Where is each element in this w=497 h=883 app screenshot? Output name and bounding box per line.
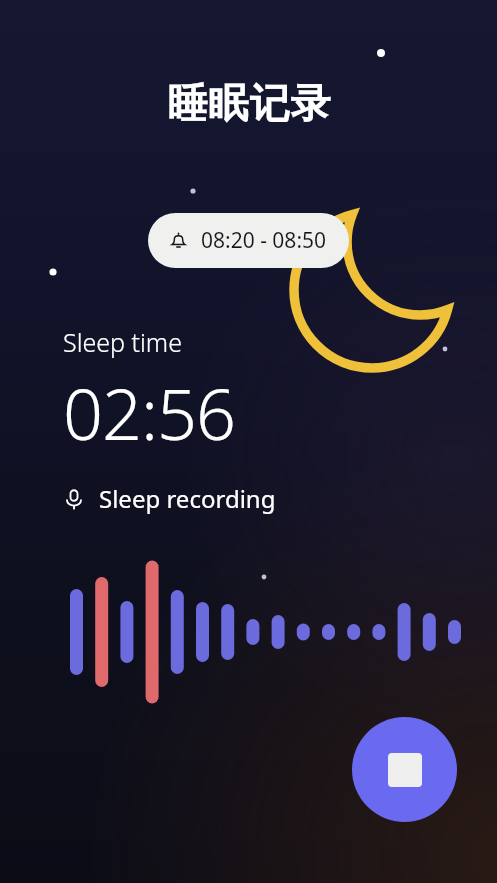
staticText: 睡眠记录: [167, 78, 331, 128]
staticText: Sleep time: [63, 325, 182, 359]
staticText: 08:20 - 08:50: [201, 226, 327, 255]
button[interactable]: Stop recording: [352, 717, 457, 822]
button[interactable]: Sleep recording: [63, 478, 276, 519]
button[interactable]: 08:20 - 08:50: [148, 213, 349, 268]
staticText: 02:56: [63, 365, 235, 460]
staticText: Sleep recording: [99, 482, 276, 515]
